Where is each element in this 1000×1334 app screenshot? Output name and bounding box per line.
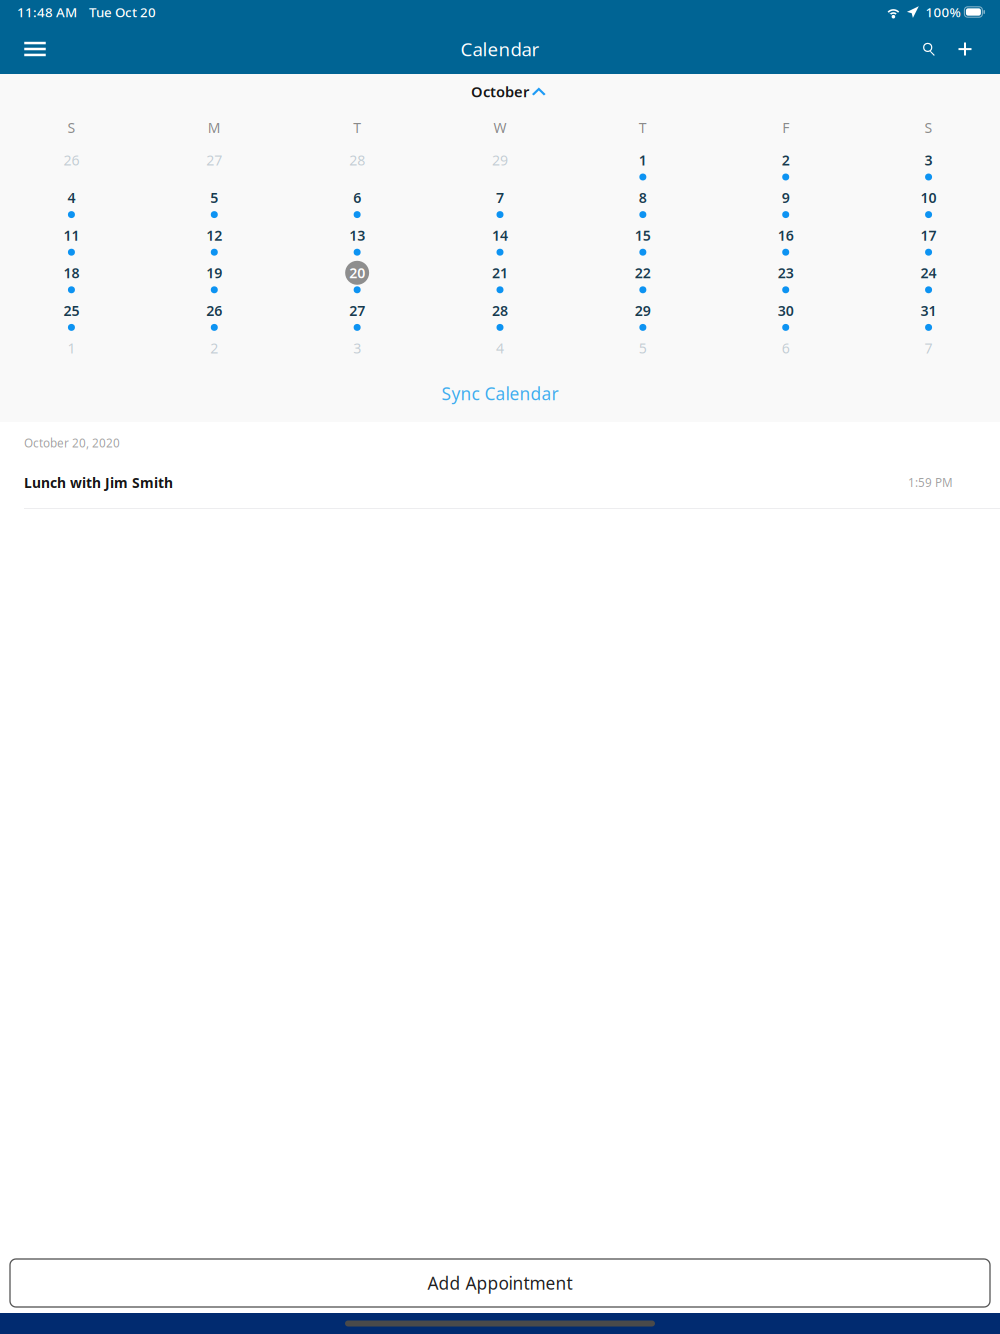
button[interactable]: Search — [912, 24, 946, 74]
staticText: 28 — [492, 301, 508, 320]
button[interactable]: 5 — [571, 336, 714, 374]
button[interactable]: 28 — [429, 298, 571, 336]
staticText: 9 — [782, 188, 790, 207]
button[interactable]: Menu — [13, 24, 57, 74]
button[interactable]: Add appointment — [946, 24, 984, 74]
staticText: 23 — [778, 263, 794, 282]
staticText: 29 — [492, 150, 508, 170]
staticText: 4 — [496, 338, 504, 358]
button[interactable]: 10 — [857, 186, 1000, 223]
button[interactable]: 22 — [571, 261, 714, 298]
staticText: M — [208, 118, 221, 137]
staticText: S — [67, 118, 75, 137]
button[interactable]: 29 — [429, 148, 571, 186]
staticText: October 20, 2020 — [24, 435, 120, 451]
staticText: 1 — [67, 338, 75, 358]
staticText: 29 — [635, 301, 651, 320]
staticText: 25 — [63, 301, 79, 320]
button[interactable]: 11 — [0, 223, 143, 261]
button[interactable]: 1 — [571, 148, 714, 186]
staticText: Tue Oct 20 — [89, 3, 156, 21]
button[interactable]: 24 — [857, 261, 1000, 298]
staticText: 2 — [782, 150, 790, 170]
staticText: 7 — [925, 338, 933, 358]
button[interactable]: 7 — [429, 186, 571, 223]
staticText: 13 — [349, 226, 365, 245]
staticText: 18 — [63, 263, 79, 282]
button[interactable]: 26 — [0, 148, 143, 186]
button[interactable]: 18 — [0, 261, 143, 298]
staticText: 27 — [349, 301, 365, 320]
staticText: 20 — [349, 263, 365, 282]
staticText: T — [353, 118, 361, 137]
staticText: Sync Calendar — [441, 382, 558, 405]
button[interactable]: Lunch with Jim Smith — [0, 464, 1000, 509]
staticText: 11:48 AM — [17, 3, 77, 21]
button[interactable]: 21 — [429, 261, 571, 298]
staticText: F — [782, 118, 789, 137]
staticText: 14 — [492, 226, 508, 245]
staticText: 11 — [63, 226, 79, 245]
button[interactable]: 27 — [286, 298, 429, 336]
button[interactable]: 30 — [714, 298, 857, 336]
button[interactable]: 8 — [571, 186, 714, 223]
button[interactable]: 4 — [0, 186, 143, 223]
staticText: 12 — [206, 226, 222, 245]
button[interactable]: 9 — [714, 186, 857, 223]
button[interactable]: 13 — [286, 223, 429, 261]
staticText: 5 — [210, 188, 218, 207]
button[interactable]: October — [427, 81, 573, 102]
button[interactable]: 14 — [429, 223, 571, 261]
staticText: 28 — [349, 150, 365, 170]
button[interactable]: 29 — [571, 298, 714, 336]
staticText: 15 — [635, 226, 651, 245]
staticText: 30 — [778, 301, 794, 320]
button[interactable]: 2 — [714, 148, 857, 186]
button[interactable]: 26 — [143, 298, 286, 336]
staticText: 6 — [353, 188, 361, 207]
button[interactable]: 3 — [857, 148, 1000, 186]
staticText: 22 — [635, 263, 651, 282]
staticText: S — [925, 118, 933, 137]
button[interactable]: 6 — [714, 336, 857, 374]
staticText: 3 — [925, 150, 933, 170]
staticText: T — [639, 118, 647, 137]
staticText: 26 — [63, 150, 79, 170]
button[interactable]: 31 — [857, 298, 1000, 336]
button[interactable]: 12 — [143, 223, 286, 261]
staticText: 100% — [925, 3, 960, 21]
button[interactable]: 27 — [143, 148, 286, 186]
staticText: 6 — [782, 338, 790, 358]
staticText: 2 — [210, 338, 218, 358]
button[interactable]: Sync Calendar — [441, 383, 558, 405]
staticText: 4 — [67, 188, 75, 207]
button[interactable]: 23 — [714, 261, 857, 298]
button[interactable]: 15 — [571, 223, 714, 261]
staticText: 24 — [921, 263, 937, 282]
staticText: 10 — [921, 188, 937, 207]
button[interactable]: 5 — [143, 186, 286, 223]
staticText: 1 — [639, 150, 647, 170]
staticText: 19 — [206, 263, 222, 282]
button[interactable]: 17 — [857, 223, 1000, 261]
staticText: Lunch with Jim Smith — [24, 473, 173, 492]
staticText: 16 — [778, 226, 794, 245]
staticText: 26 — [206, 301, 222, 320]
staticText: W — [493, 118, 506, 137]
button[interactable]: 28 — [286, 148, 429, 186]
button[interactable]: Add Appointment — [10, 1259, 990, 1307]
staticText: 3 — [353, 338, 361, 358]
button[interactable]: 6 — [286, 186, 429, 223]
staticText: 21 — [492, 263, 508, 282]
button[interactable]: 20 — [286, 261, 429, 298]
button[interactable]: 16 — [714, 223, 857, 261]
staticText: 31 — [921, 301, 937, 320]
button[interactable]: 25 — [0, 298, 143, 336]
button[interactable]: 19 — [143, 261, 286, 298]
staticText: 1:59 PM — [908, 474, 953, 490]
